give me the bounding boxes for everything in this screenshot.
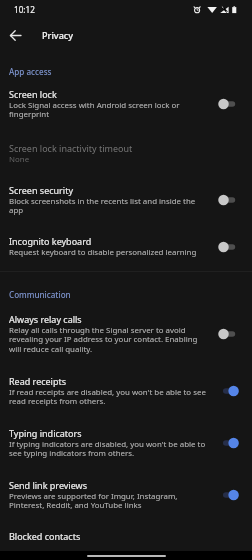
staticText: Lock Signal access with Android screen l… (9, 100, 208, 120)
button[interactable]: Typing indicators (0, 415, 252, 467)
staticText: Previews are supported for Imgur, Instag… (9, 491, 208, 511)
staticText: Block screenshots in the recents list an… (9, 196, 208, 216)
staticText: Privacy (42, 29, 74, 41)
button[interactable]: Incognito keyboard (0, 224, 252, 266)
staticText: None (9, 154, 30, 165)
staticText: Blocked contacts (9, 530, 81, 542)
staticText: Relay all calls through the Signal serve… (9, 325, 208, 355)
staticText: If read receipts are disabled, you won't… (9, 387, 208, 407)
button[interactable]: Screen security (0, 173, 252, 224)
staticText: Screen security (9, 184, 73, 196)
staticText: If typing indicators are disabled, you w… (9, 439, 208, 459)
button[interactable]: Blocked contacts (0, 519, 252, 550)
staticText: Read receipts (9, 375, 67, 387)
button[interactable]: Always relay calls (0, 300, 252, 363)
staticText: Incognito keyboard (9, 235, 92, 247)
staticText: Request keyboard to disable personalized… (9, 247, 197, 258)
staticText: Screen lock inactivity timeout (9, 142, 133, 154)
staticText: Send link previews (9, 479, 87, 491)
staticText: App access (9, 66, 52, 77)
staticText: Screen lock (9, 88, 57, 100)
button[interactable]: Read receipts (0, 363, 252, 415)
staticText: 10:12 (14, 4, 35, 15)
staticText: Always relay calls (9, 313, 82, 325)
button[interactable]: Screen lock (0, 77, 252, 128)
button[interactable]: Screen lock inactivity timeout (0, 128, 252, 173)
staticText: Typing indicators (9, 427, 82, 439)
staticText: Communication (9, 289, 71, 300)
button[interactable]: Back (0, 20, 30, 50)
button[interactable]: Send link previews (0, 467, 252, 519)
